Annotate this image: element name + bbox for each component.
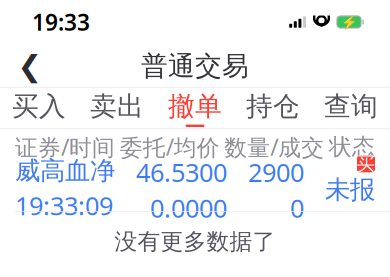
staticText: 买 <box>356 152 375 175</box>
staticText: 数量/成交 <box>224 132 324 162</box>
button[interactable]: 撤单 <box>156 88 234 129</box>
staticText: 卖出 <box>90 90 144 123</box>
staticText: ❮ <box>17 49 42 83</box>
button[interactable]: 查询 <box>312 88 390 129</box>
button[interactable]: 买入 <box>0 88 78 129</box>
staticText: 持仓 <box>246 90 300 123</box>
staticText: 委托/均价 <box>120 132 220 162</box>
staticText: 0.0000 <box>150 191 227 225</box>
button[interactable]: 威高血净 <box>0 165 390 211</box>
staticText: 46.5300 <box>136 155 227 189</box>
staticText: 状态 <box>329 133 375 161</box>
button[interactable]: Back <box>8 44 52 88</box>
button[interactable]: 卖出 <box>78 88 156 129</box>
staticText: ⚡ <box>340 14 357 30</box>
staticText: 证券/时间 <box>15 132 115 162</box>
staticText: 没有更多数据了 <box>114 228 275 255</box>
staticText: 查询 <box>324 90 378 123</box>
staticText: 19:33 <box>32 7 90 37</box>
staticText: 未报 <box>325 174 375 205</box>
staticText: 2900 <box>248 155 304 189</box>
staticText: 0 <box>290 191 304 225</box>
button[interactable]: 持仓 <box>234 88 312 129</box>
staticText: 威高血净 <box>15 155 115 186</box>
staticText: 买入 <box>12 90 66 123</box>
staticText: 撤单 <box>168 90 222 123</box>
staticText: 普通交易 <box>141 50 249 82</box>
staticText: 19:33:09 <box>15 188 113 222</box>
